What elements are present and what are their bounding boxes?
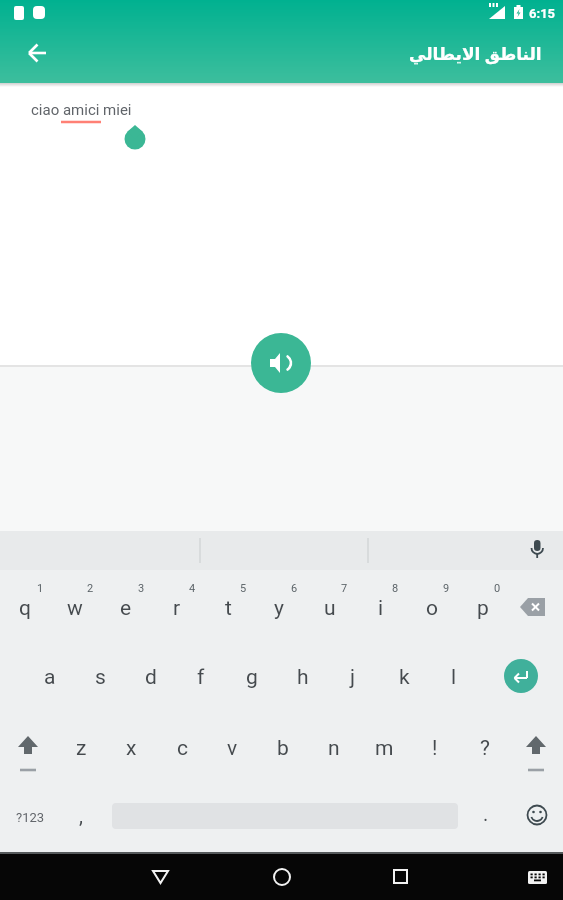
staticText: 6 bbox=[291, 582, 298, 595]
staticText: 4 bbox=[189, 582, 196, 595]
button[interactable]: q bbox=[3, 588, 47, 628]
staticText: الناطق الايطالي bbox=[409, 42, 542, 65]
staticText: m bbox=[375, 736, 394, 761]
button[interactable]: v bbox=[211, 728, 253, 768]
staticText: h bbox=[297, 665, 309, 690]
button[interactable]: e bbox=[104, 588, 148, 628]
staticText: ? bbox=[480, 736, 490, 761]
button[interactable]: b bbox=[262, 728, 304, 768]
staticText: v bbox=[227, 736, 238, 761]
staticText: w bbox=[67, 596, 83, 621]
staticText: e bbox=[120, 596, 132, 621]
staticText: 6:15 bbox=[529, 6, 556, 21]
staticText: u bbox=[324, 596, 336, 621]
button[interactable]: g bbox=[230, 657, 274, 697]
button[interactable]: u bbox=[308, 588, 352, 628]
button[interactable]: y bbox=[257, 588, 301, 628]
button[interactable]: s bbox=[78, 657, 122, 697]
button[interactable]: x bbox=[110, 728, 152, 768]
button[interactable]: h bbox=[281, 657, 325, 697]
button[interactable]: i bbox=[359, 588, 403, 628]
button[interactable] bbox=[262, 854, 302, 900]
button[interactable] bbox=[16, 33, 56, 73]
staticText: ciao amici miei bbox=[31, 101, 132, 119]
staticText: d bbox=[145, 665, 157, 690]
button[interactable]: z bbox=[60, 728, 102, 768]
button[interactable]: m bbox=[363, 728, 405, 768]
button[interactable]: t bbox=[206, 588, 250, 628]
button[interactable]: n bbox=[313, 728, 355, 768]
button[interactable]: p bbox=[461, 588, 505, 628]
staticText: z bbox=[76, 736, 87, 761]
button[interactable] bbox=[512, 588, 556, 628]
button[interactable]: r bbox=[155, 588, 199, 628]
button[interactable]: k bbox=[382, 657, 426, 697]
button[interactable] bbox=[140, 854, 180, 900]
button[interactable]: ?123 bbox=[4, 800, 56, 834]
staticText: . bbox=[483, 802, 489, 825]
staticText: ! bbox=[432, 736, 438, 761]
staticText: 1 bbox=[37, 582, 44, 595]
button[interactable]: ! bbox=[414, 728, 456, 768]
staticText: p bbox=[477, 596, 489, 621]
staticText: c bbox=[177, 736, 188, 761]
staticText: 9 bbox=[443, 582, 450, 595]
button[interactable]: j bbox=[331, 657, 375, 697]
staticText: a bbox=[44, 665, 56, 690]
staticText: 2 bbox=[87, 582, 94, 595]
button[interactable]: f bbox=[179, 657, 223, 697]
staticText: l bbox=[451, 665, 457, 690]
staticText: r bbox=[173, 596, 181, 621]
button[interactable]: d bbox=[129, 657, 173, 697]
button[interactable] bbox=[380, 854, 420, 900]
button[interactable]: l bbox=[432, 657, 476, 697]
staticText: s bbox=[95, 665, 106, 690]
staticText: , bbox=[79, 804, 83, 827]
button[interactable]: a bbox=[28, 657, 72, 697]
staticText: y bbox=[274, 596, 284, 621]
button[interactable]: o bbox=[410, 588, 454, 628]
button[interactable] bbox=[515, 728, 557, 774]
button[interactable] bbox=[518, 854, 558, 900]
staticText: ?123 bbox=[16, 810, 45, 825]
button[interactable]: , bbox=[64, 798, 98, 832]
button[interactable] bbox=[519, 797, 555, 833]
staticText: n bbox=[328, 736, 340, 761]
button[interactable] bbox=[504, 659, 538, 693]
staticText: 3 bbox=[138, 582, 145, 595]
button[interactable]: c bbox=[161, 728, 203, 768]
staticText: g bbox=[246, 665, 258, 690]
staticText: 0 bbox=[494, 582, 501, 595]
staticText: j bbox=[350, 665, 356, 690]
staticText: i bbox=[378, 596, 384, 621]
staticText: 5 bbox=[240, 582, 247, 595]
staticText: 8 bbox=[392, 582, 399, 595]
button[interactable] bbox=[515, 531, 559, 570]
button[interactable]: ? bbox=[464, 728, 506, 768]
staticText: o bbox=[426, 596, 438, 621]
button[interactable] bbox=[251, 333, 311, 393]
button[interactable]: . bbox=[469, 796, 503, 830]
staticText: k bbox=[399, 665, 410, 690]
staticText: 7 bbox=[341, 582, 348, 595]
staticText: x bbox=[126, 736, 137, 761]
staticText: b bbox=[277, 736, 289, 761]
staticText: t bbox=[225, 596, 232, 621]
staticText: q bbox=[19, 596, 31, 621]
staticText: f bbox=[197, 665, 205, 690]
button[interactable]: w bbox=[53, 588, 97, 628]
button[interactable] bbox=[7, 728, 49, 774]
